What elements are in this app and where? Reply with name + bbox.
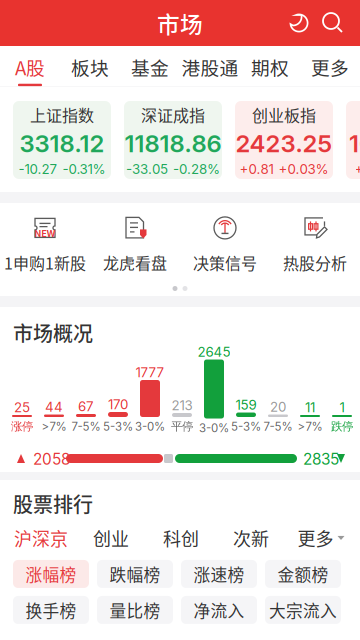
button[interactable]: 净流入 [181,596,257,624]
button[interactable]: 港股通 [180,46,240,86]
staticText: 龙虎看盘 [103,251,167,274]
staticText: 7-5% [263,420,292,433]
staticText: 涨速榜 [193,562,244,586]
button[interactable]: 更多 [286,522,356,554]
staticText: 7-5% [71,420,100,433]
staticText: 上证指数 [30,103,94,126]
staticText: 5-3% [103,420,133,433]
staticText: 2058 [33,450,70,469]
button[interactable]: 期权 [240,46,300,86]
button[interactable]: 沪深京 [6,522,76,554]
button[interactable]: 深证成指 [124,101,222,179]
button[interactable]: 换手榜 [13,596,89,624]
staticText: 3-0% [199,421,229,435]
staticText: >7% [297,420,322,433]
staticText: 2645 [197,344,230,360]
staticText: 20 [270,399,286,415]
staticText: A股 [15,54,45,81]
staticText: 基金 [131,54,169,81]
staticText: 期权 [251,54,289,81]
staticText: 11 [305,399,315,415]
staticText: 大宗流入 [269,598,337,622]
staticText: -0.31% [62,161,105,177]
staticText: 213 [171,397,192,413]
staticText: 金额榜 [277,562,328,586]
staticText: NEW [34,229,55,239]
staticText: -10.27 [18,161,57,177]
button[interactable]: 创业 [76,522,146,554]
staticText: 2423.25 [235,129,332,158]
staticText: 更多 [311,54,349,81]
button[interactable]: Night mode [282,6,316,40]
staticText: 港股通 [181,54,238,81]
staticText: 5-3% [231,420,261,433]
button[interactable]: 涨速榜 [181,560,257,588]
button[interactable]: 科创50 [346,101,360,179]
button[interactable]: 板块 [60,46,120,86]
staticText: 创业板指 [252,103,316,126]
button[interactable]: 次新 [216,522,286,554]
button[interactable]: Search [316,6,350,40]
staticText: 涨幅榜 [25,562,76,586]
staticText: 1777 [135,364,164,380]
staticText: 净流入 [193,598,244,622]
staticText: 板块 [71,54,109,81]
staticText: 更多 [297,525,333,551]
staticText: +0.03% [278,161,328,177]
button[interactable]: 创业板指 [235,101,333,179]
staticText: -0.28% [173,161,220,177]
button[interactable]: 金额榜 [265,560,341,588]
button[interactable]: 更多 [300,46,360,86]
staticText: 热股分析 [283,251,347,274]
staticText: +2.11 [354,161,360,177]
staticText: 科创 [163,525,199,551]
staticText: 3318.12 [19,129,104,158]
staticText: 67 [78,398,94,414]
staticText: 次新 [233,525,269,551]
button[interactable]: NEW [0,214,90,274]
staticText: +0.81 [239,161,273,177]
button[interactable]: 跌幅榜 [97,560,173,588]
staticText: 3-0% [135,420,165,433]
staticText: 量比榜 [109,598,160,622]
staticText: 跌幅榜 [109,562,160,586]
button[interactable]: A股 [0,46,60,86]
staticText: 1 [339,399,344,415]
button[interactable]: 热股分析 [270,214,360,274]
button[interactable]: 基金 [120,46,180,86]
staticText: 创业 [93,525,129,551]
button[interactable]: 上证指数 [13,101,111,179]
staticText: 跌停 [331,419,353,434]
button[interactable]: 大宗流入 [265,596,341,624]
staticText: 市场 [157,7,203,39]
button[interactable]: 涨幅榜 [13,560,89,588]
staticText: 1024.52 [349,129,360,158]
staticText: -33.05 [126,161,168,177]
staticText: 44 [45,399,63,415]
button[interactable]: 量比榜 [97,596,173,624]
staticText: 换手榜 [25,598,76,622]
staticText: 2835 [303,450,339,469]
button[interactable]: 龙虎看盘 [90,214,180,274]
staticText: 平停 [171,419,193,434]
staticText: 涨停 [11,419,33,434]
staticText: 沪深京 [14,525,68,551]
button[interactable]: 科创 [146,522,216,554]
staticText: 170 [108,396,128,412]
staticText: 1申购1新股 [4,251,86,274]
staticText: 市场概况 [13,318,93,347]
staticText: 股票排行 [13,489,93,518]
staticText: 深证成指 [141,103,205,126]
staticText: 决策信号 [193,251,257,274]
staticText: 159 [235,397,256,413]
staticText: 11818.86 [124,129,221,158]
button[interactable]: 决策信号 [180,214,270,274]
staticText: >7% [41,420,66,433]
staticText: 25 [14,399,30,415]
